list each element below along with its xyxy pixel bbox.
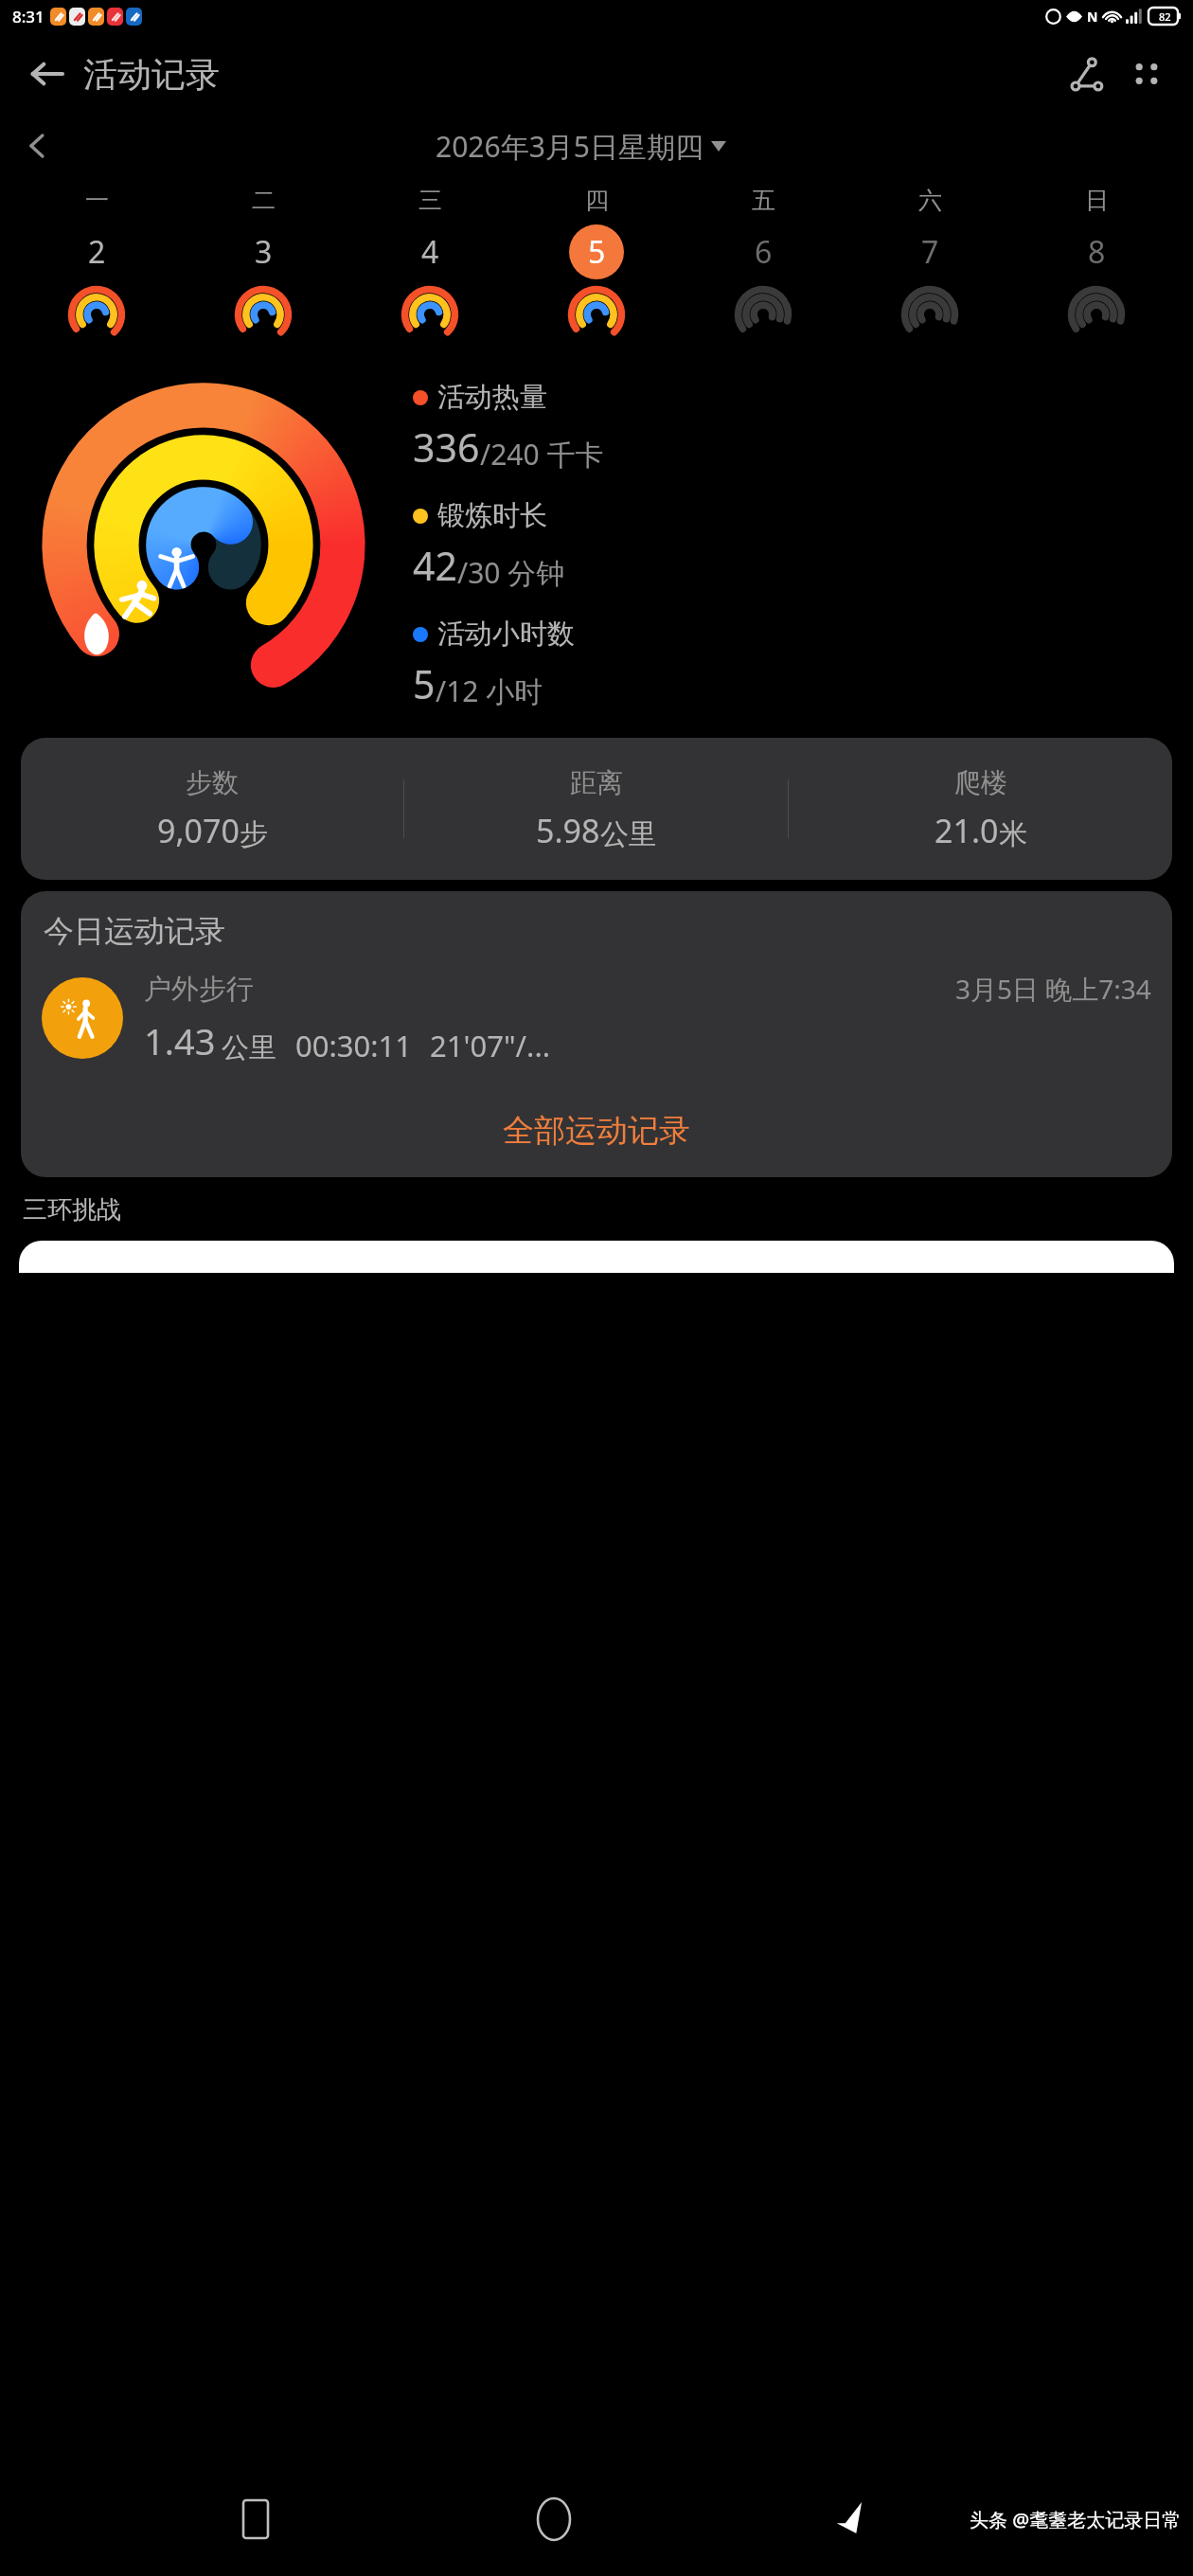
staticText: 6 xyxy=(755,231,773,273)
button[interactable]: 4 xyxy=(402,224,457,279)
button[interactable]: 步数 xyxy=(21,738,1172,880)
button[interactable]: 全部运动记录 xyxy=(21,1098,1172,1164)
staticText: 三环挑战 xyxy=(23,1194,121,1225)
staticText: 21.0 xyxy=(935,809,999,852)
staticText: 9,070 xyxy=(157,809,240,852)
staticText: 全部运动记录 xyxy=(503,1111,690,1151)
button[interactable]: 2 xyxy=(69,224,124,279)
button[interactable]: Previous day xyxy=(13,121,62,170)
staticText: 日 xyxy=(1085,186,1109,215)
button[interactable]: 6 xyxy=(736,224,791,279)
button[interactable]: 活动小时数 xyxy=(413,617,575,710)
button[interactable]: 3 xyxy=(236,224,291,279)
staticText: /240 千卡 xyxy=(480,435,604,474)
button[interactable]: 7 xyxy=(902,224,957,279)
staticText: 户外步行 xyxy=(144,972,254,1007)
staticText: 4 xyxy=(421,231,439,273)
button[interactable]: Recents xyxy=(213,2477,298,2562)
staticText: 336 xyxy=(413,420,480,474)
staticText: 8:31 xyxy=(12,6,45,27)
staticText: 2026年3月5日星期四 xyxy=(436,127,703,166)
staticText: 四 xyxy=(585,186,609,215)
staticText: 42 xyxy=(413,539,457,592)
button[interactable]: Home xyxy=(511,2477,596,2562)
staticText: 锻炼时长 xyxy=(437,498,547,533)
staticText: 距离 xyxy=(570,766,623,799)
staticText: 2 xyxy=(88,231,106,273)
button[interactable]: 锻炼时长 xyxy=(413,498,565,592)
staticText: 六 xyxy=(918,186,942,215)
staticText: 5 xyxy=(588,231,606,273)
staticText: 82 xyxy=(1159,9,1171,24)
staticText: 5.98 xyxy=(536,809,600,852)
button[interactable]: Back xyxy=(17,45,76,103)
staticText: 五 xyxy=(752,186,775,215)
button[interactable]: 活动热量 xyxy=(413,380,604,474)
button[interactable]: 8 xyxy=(1069,224,1124,279)
staticText: 公里 xyxy=(600,816,657,852)
staticText: 1.43 xyxy=(144,1016,216,1065)
button[interactable]: 2026年3月5日星期四 xyxy=(436,127,726,166)
staticText: 活动热量 xyxy=(437,380,547,415)
staticText: N xyxy=(1087,8,1098,26)
staticText: 米 xyxy=(999,816,1027,852)
button[interactable]: Share xyxy=(1059,45,1117,103)
staticText: 00:30:11 xyxy=(295,1026,413,1065)
staticText: 3月5日 晚上7:34 xyxy=(955,971,1151,1007)
button[interactable] xyxy=(19,1241,1174,1273)
staticText: 步 xyxy=(240,816,268,852)
staticText: 头条 @耄耋老太记录日常 xyxy=(970,2507,1182,2532)
staticText: 活动小时数 xyxy=(437,617,575,652)
staticText: 8 xyxy=(1088,231,1106,273)
staticText: /30 分钟 xyxy=(457,553,565,592)
staticText: 3 xyxy=(255,231,273,273)
staticText: 爬楼 xyxy=(954,766,1007,799)
staticText: 步数 xyxy=(186,766,239,799)
staticText: 今日运动记录 xyxy=(44,912,225,950)
staticText: 7 xyxy=(921,231,939,273)
staticText: 5 xyxy=(413,657,436,710)
button[interactable]: Back xyxy=(810,2477,895,2562)
staticText: 二 xyxy=(252,186,276,215)
button[interactable]: 户外步行 xyxy=(42,971,1151,1065)
staticText: 公里 xyxy=(222,1030,276,1065)
staticText: 活动记录 xyxy=(83,53,220,96)
staticText: 一 xyxy=(85,186,109,215)
staticText: 三 xyxy=(418,186,442,215)
staticText: 21'07"/... xyxy=(430,1026,551,1065)
button[interactable]: More options xyxy=(1117,45,1176,103)
staticText: /12 小时 xyxy=(436,671,543,710)
button[interactable]: 5 xyxy=(569,224,624,279)
